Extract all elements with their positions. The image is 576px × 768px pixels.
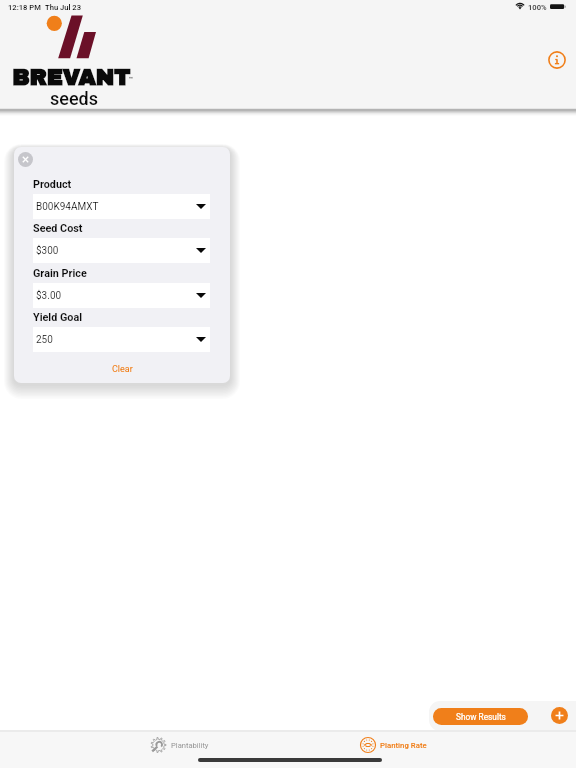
staticText: 12:18 PM [8,3,41,12]
button[interactable]: Close [18,152,33,167]
staticText: Plantability [171,741,209,750]
button[interactable]: Add [551,707,568,724]
staticText: Product [33,178,72,191]
staticText: Thu Jul 23 [45,3,82,12]
staticText: Planting Rate [380,741,427,750]
button[interactable]: Show Results [433,708,528,725]
button[interactable]: Information [545,48,569,72]
staticText: Show Results [456,712,506,722]
staticText: Seed Cost [33,222,83,235]
button[interactable]: Clear [102,363,143,376]
button[interactable]: $3.00 [33,283,210,308]
staticText: $3.00 [36,290,62,302]
staticText: seeds [50,88,98,109]
staticText: BREVANT [12,66,130,90]
staticText: 250 [36,334,53,346]
staticText: B00K94AMXT [36,201,99,213]
staticText: Grain Price [33,267,87,280]
staticText: $300 [36,245,59,257]
button[interactable]: $300 [33,238,210,263]
button[interactable]: B00K94AMXT [33,194,210,219]
staticText: 100% [528,3,547,12]
staticText: ™ [129,75,133,82]
button[interactable]: Plantability [146,734,213,756]
button[interactable]: 250 [33,327,210,352]
staticText: Yield Goal [33,311,83,324]
button[interactable]: Planting Rate [356,734,431,756]
